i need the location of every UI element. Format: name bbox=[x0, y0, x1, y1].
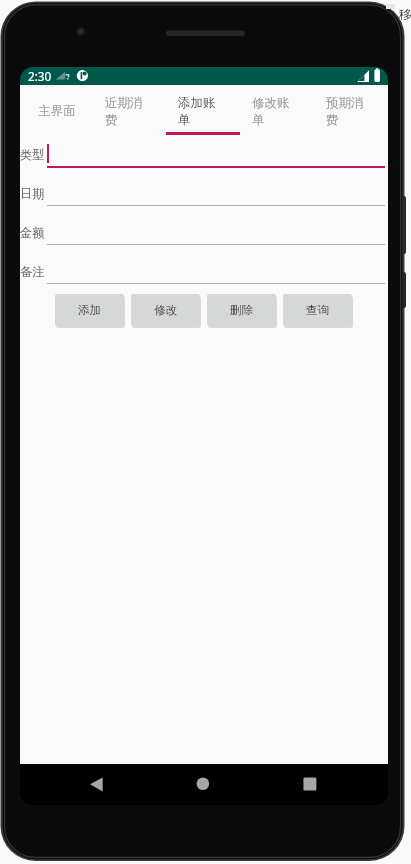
staticText: 修改账单 bbox=[252, 95, 296, 128]
staticText: 删除 bbox=[230, 303, 254, 318]
button[interactable]: 查询 bbox=[283, 294, 352, 326]
staticText: 查询 bbox=[306, 303, 330, 318]
button[interactable]: 主界面 bbox=[20, 85, 93, 135]
button[interactable]: 预期消费 bbox=[314, 85, 388, 135]
staticText: 添加 bbox=[78, 303, 102, 318]
staticText: 移 bbox=[399, 6, 411, 22]
button[interactable]: 修改 bbox=[131, 294, 200, 326]
staticText: 备注 bbox=[20, 264, 45, 279]
staticText: 主界面 bbox=[32, 103, 82, 119]
staticText: 近期消费 bbox=[105, 95, 149, 128]
staticText: 类型 bbox=[20, 147, 45, 162]
staticText: 金额 bbox=[20, 225, 45, 240]
staticText: 2:30 bbox=[28, 68, 52, 84]
button[interactable]: 近期消费 bbox=[93, 85, 166, 135]
button[interactable]: 修改账单 bbox=[240, 85, 314, 135]
staticText: 添加账单 bbox=[178, 95, 222, 128]
staticText: 日期 bbox=[20, 186, 45, 201]
button[interactable]: 删除 bbox=[207, 294, 276, 326]
staticText: 修改 bbox=[154, 303, 178, 318]
button[interactable]: 添加 bbox=[55, 294, 124, 326]
staticText: 预期消费 bbox=[326, 95, 370, 128]
button[interactable]: 添加账单 bbox=[166, 85, 240, 135]
